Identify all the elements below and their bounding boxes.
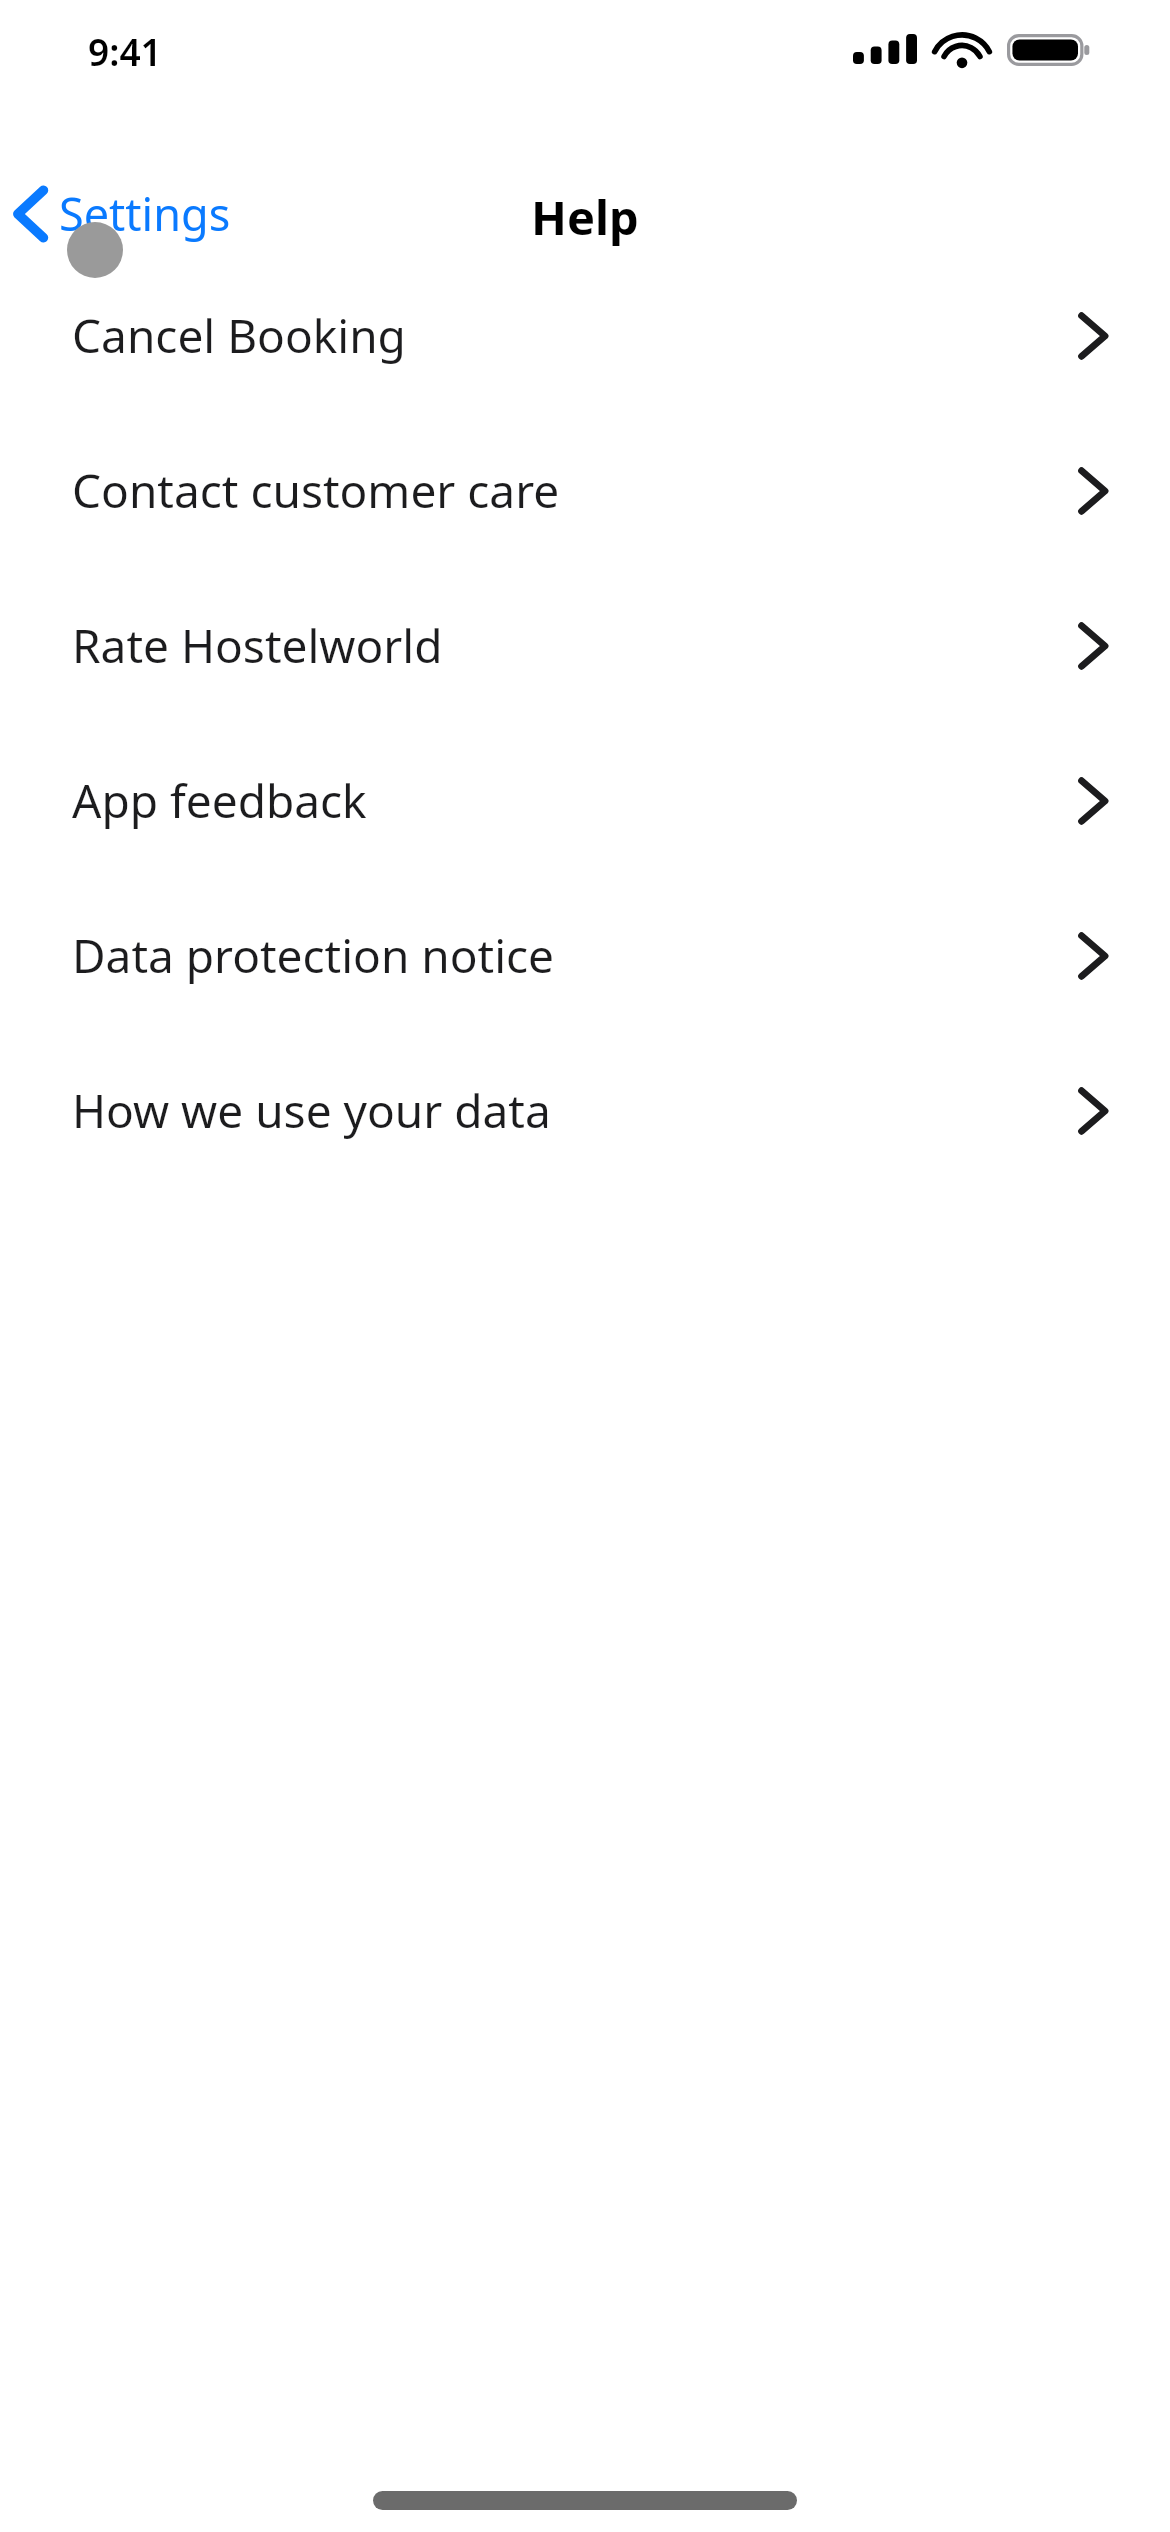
- button[interactable]: How we use your data: [0, 1033, 1170, 1188]
- button[interactable]: Contact customer care: [0, 413, 1170, 568]
- staticText: Rate Hostelworld: [72, 614, 443, 677]
- button[interactable]: Settings: [14, 168, 264, 258]
- button[interactable]: Rate Hostelworld: [0, 568, 1170, 723]
- button[interactable]: Cancel Booking: [0, 258, 1170, 413]
- staticText: 9:41: [88, 26, 162, 76]
- staticText: Settings: [59, 183, 231, 244]
- staticText: Data protection notice: [72, 924, 555, 987]
- staticText: Contact customer care: [72, 459, 560, 522]
- staticText: Cancel Booking: [72, 304, 406, 367]
- button[interactable]: App feedback: [0, 723, 1170, 878]
- staticText: App feedback: [72, 769, 367, 832]
- button[interactable]: Data protection notice: [0, 878, 1170, 1033]
- staticText: How we use your data: [72, 1079, 551, 1142]
- staticText: Help: [531, 185, 639, 249]
